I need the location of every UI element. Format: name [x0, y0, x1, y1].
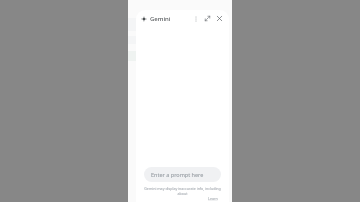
staticText: Learn more — [208, 196, 223, 202]
button[interactable]: Close — [214, 13, 225, 24]
staticText: Enter a prompt here — [151, 171, 204, 178]
button[interactable]: Enter a prompt here — [144, 167, 221, 182]
button[interactable]: Expand — [202, 13, 213, 24]
staticText: Gemini — [150, 15, 171, 23]
button[interactable]: Learn more — [208, 196, 223, 202]
button[interactable]: More options — [190, 13, 201, 24]
button[interactable]: Gemini — [141, 15, 171, 23]
staticText: Gemini may display inaccurate info, incl… — [142, 186, 223, 196]
